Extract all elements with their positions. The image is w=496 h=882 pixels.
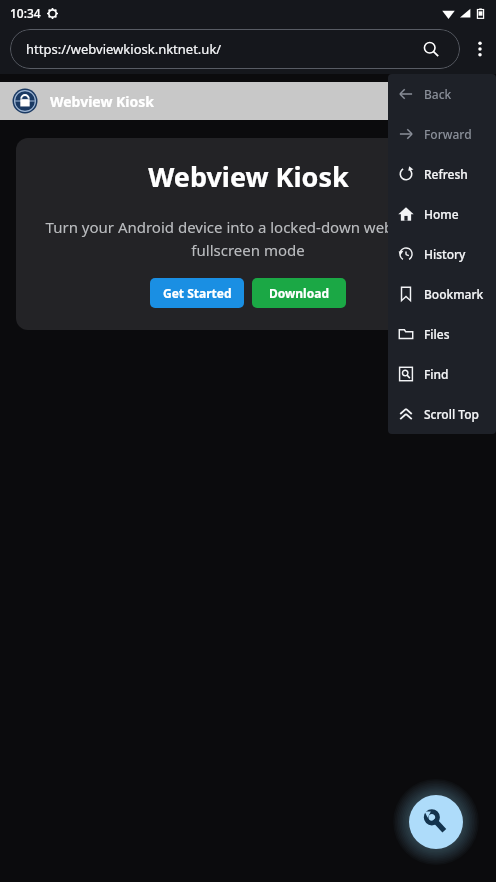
staticText: Webview Kiosk xyxy=(50,92,155,111)
staticText: Download xyxy=(269,285,329,301)
staticText: Scroll Top xyxy=(424,406,479,422)
staticText: Forward xyxy=(424,126,472,142)
button[interactable]: Find xyxy=(388,354,496,394)
staticText: Get Started xyxy=(163,285,232,301)
staticText: 10:34 xyxy=(10,5,41,21)
button[interactable]: Download xyxy=(252,278,346,308)
staticText: Back xyxy=(424,86,452,102)
staticText: Turn your Android device into a locked-d… xyxy=(44,217,452,260)
button[interactable]: Tools xyxy=(409,795,463,849)
button[interactable]: More options xyxy=(464,33,496,65)
staticText: Home xyxy=(424,206,459,222)
staticText: History xyxy=(424,246,466,262)
staticText: Files xyxy=(424,326,450,342)
button[interactable]: Search xyxy=(418,36,444,62)
staticText: Find xyxy=(424,366,449,382)
staticText: Refresh xyxy=(424,166,468,182)
button[interactable]: Refresh xyxy=(388,154,496,194)
staticText: Bookmark xyxy=(424,286,484,302)
button[interactable]: Back xyxy=(388,74,496,114)
button[interactable]: History xyxy=(388,234,496,274)
staticText: https://webviewkiosk.nktnet.uk/ xyxy=(26,40,222,58)
button[interactable]: https://webviewkiosk.nktnet.uk/ xyxy=(10,29,460,69)
button[interactable]: Home xyxy=(388,194,496,234)
button[interactable]: Bookmark xyxy=(388,274,496,314)
button[interactable]: Get Started xyxy=(150,278,244,308)
button[interactable]: Forward xyxy=(388,114,496,154)
staticText: Webview Kiosk xyxy=(148,158,349,195)
button[interactable]: Scroll Top xyxy=(388,394,496,434)
button[interactable]: Files xyxy=(388,314,496,354)
